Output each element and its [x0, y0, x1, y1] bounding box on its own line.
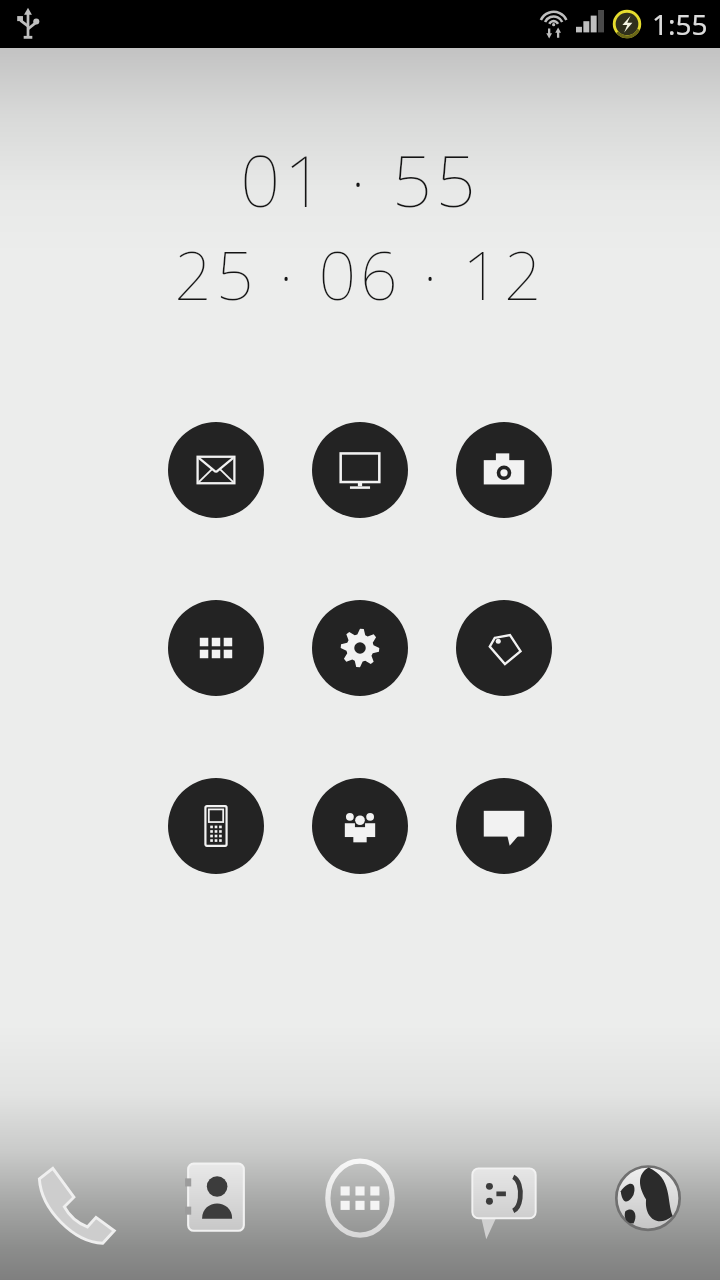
button[interactable]: Display [312, 422, 408, 518]
button[interactable]: Phone [0, 1140, 144, 1280]
button[interactable]: Contacts [144, 1140, 288, 1280]
button[interactable]: Tags [456, 600, 552, 696]
staticText: 01 · 55 [240, 132, 480, 227]
button[interactable]: Messages [456, 778, 552, 874]
button[interactable]: People [312, 778, 408, 874]
button[interactable]: Messaging [432, 1140, 576, 1280]
button[interactable]: Email [168, 422, 264, 518]
button[interactable]: Settings [312, 600, 408, 696]
button[interactable]: Camera [456, 422, 552, 518]
button[interactable]: Phone [168, 778, 264, 874]
staticText: 1:55 [652, 5, 708, 43]
button[interactable]: All apps [168, 600, 264, 696]
button[interactable]: Browser [576, 1140, 720, 1280]
other: USB connected [10, 6, 46, 42]
staticText: 25 · 06 · 12 [174, 229, 546, 319]
button[interactable]: All apps [288, 1140, 432, 1280]
